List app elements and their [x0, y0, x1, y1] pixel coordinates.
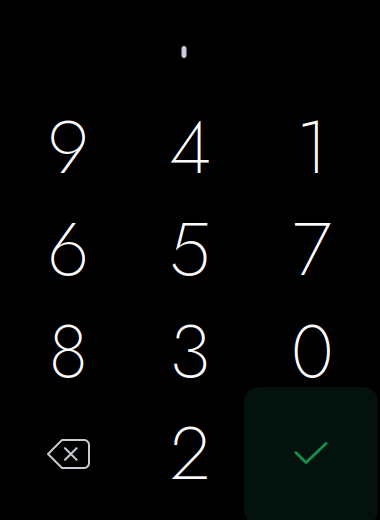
button[interactable]: 7	[251, 198, 373, 300]
button[interactable]: 0	[251, 300, 373, 402]
staticText: 5	[169, 195, 211, 303]
staticText: 3	[169, 297, 210, 405]
button[interactable]: 1	[251, 96, 373, 198]
button[interactable]: 3	[129, 300, 251, 402]
staticText: 6	[47, 195, 88, 303]
button[interactable]: 9	[7, 96, 129, 198]
staticText: 7	[292, 195, 331, 303]
button[interactable]: 2	[129, 402, 251, 504]
button[interactable]: Delete	[7, 402, 129, 504]
button[interactable]: 4	[129, 96, 251, 198]
button[interactable]: 5	[129, 198, 251, 300]
button[interactable]: 6	[7, 198, 129, 300]
staticText: 1	[296, 93, 328, 201]
staticText: 0	[291, 297, 333, 405]
button[interactable]: Confirm	[251, 402, 373, 504]
staticText: 2	[170, 399, 210, 507]
button[interactable]: 8	[7, 300, 129, 402]
staticText: 4	[169, 93, 211, 201]
staticText: 9	[47, 93, 88, 201]
staticText: 8	[48, 297, 87, 405]
